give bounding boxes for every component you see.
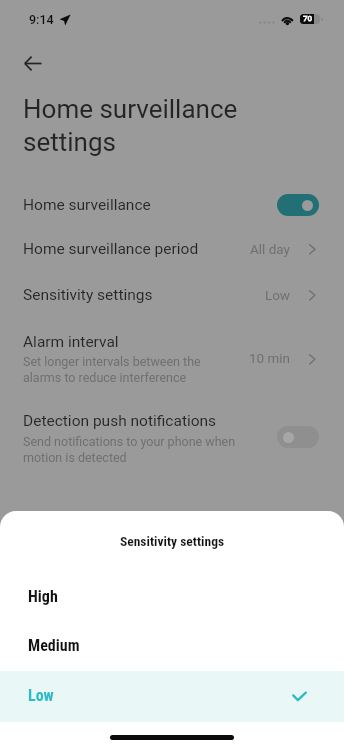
staticText: Home surveillance period [23, 240, 199, 258]
button[interactable] [0, 324, 344, 390]
staticText: Sensitivity settings [0, 533, 344, 549]
staticText: 9:14 [29, 12, 54, 27]
staticText: High [28, 587, 58, 606]
button[interactable] [0, 404, 344, 470]
staticText: Low [28, 686, 54, 705]
staticText: Send notifications to your phone when mo… [23, 434, 236, 465]
button[interactable]: Medium [0, 625, 344, 671]
button[interactable] [0, 190, 344, 234]
button[interactable]: Home surveillance on [277, 194, 319, 216]
button[interactable]: Low [0, 671, 344, 722]
button[interactable]: Detection push notifications off [277, 426, 319, 448]
staticText: 10 min [0, 350, 290, 366]
button[interactable]: High [0, 576, 344, 622]
button[interactable]: Back [9, 39, 57, 87]
button[interactable] [0, 234, 344, 278]
button[interactable] [0, 278, 344, 322]
staticText: Set longer intervals between the alarms … [23, 354, 201, 385]
staticText: Home surveillance [23, 196, 151, 214]
staticText: Alarm interval [23, 333, 119, 351]
staticText: Low [0, 287, 290, 303]
staticText: 70 [303, 14, 313, 23]
staticText: Sensitivity settings [23, 286, 153, 304]
staticText: Detection push notifications [23, 412, 217, 430]
staticText: All day [0, 241, 290, 257]
staticText: Home surveillance settings [23, 94, 238, 157]
staticText: Medium [28, 636, 80, 655]
